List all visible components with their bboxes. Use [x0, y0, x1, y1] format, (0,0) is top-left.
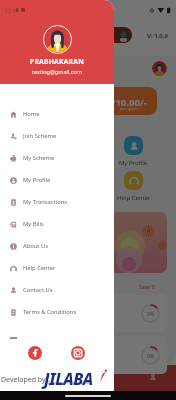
- staticText: 0%: [147, 311, 155, 318]
- staticText: Contact Us: [23, 286, 53, 294]
- button[interactable]: Contact Us: [0, 279, 114, 301]
- staticText: per gram: [120, 106, 138, 111]
- staticText: My Scheme: [23, 154, 55, 162]
- staticText: Terms & Conditions: [23, 308, 77, 316]
- staticText: 12:43: [5, 7, 19, 14]
- staticText: Save ₹!: [139, 284, 156, 291]
- staticText: About Us: [23, 242, 48, 250]
- staticText: My Transactions: [23, 198, 68, 206]
- button[interactable]: My Bills: [0, 213, 114, 235]
- staticText: Help Center: [117, 194, 151, 202]
- button[interactable]: Join Scheme: [0, 125, 114, 147]
- staticText: Developed by: [1, 375, 46, 385]
- staticText: Delivering software solutions: [48, 381, 92, 385]
- button[interactable]: Logout: [10, 337, 17, 339]
- button[interactable]: Home: [0, 103, 114, 125]
- button[interactable]: My Transactions: [0, 191, 114, 213]
- staticText: My Profile: [23, 176, 51, 184]
- staticText: V: 1.0.0: [147, 32, 168, 40]
- button[interactable]: My Profile: [0, 169, 114, 191]
- staticText: Home: [23, 110, 40, 118]
- staticText: 710.00/-: [110, 96, 147, 109]
- staticText: PRABHAKARAN: [30, 57, 84, 66]
- staticText: My Bills: [23, 220, 44, 228]
- button[interactable]: Facebook: [28, 346, 42, 360]
- staticText: JILABA: [44, 368, 93, 390]
- staticText: testing@gmail.com: [32, 68, 82, 75]
- button[interactable]: Instagram: [71, 346, 85, 360]
- button[interactable]: My Scheme: [0, 147, 114, 169]
- staticText: My Profile: [119, 159, 148, 167]
- staticText: Help Center: [23, 264, 56, 272]
- button[interactable]: Terms & Conditions: [0, 301, 114, 323]
- staticText: 0%: [147, 353, 155, 360]
- button[interactable]: About Us: [0, 235, 114, 257]
- staticText: Join Scheme: [23, 132, 57, 140]
- button[interactable]: Help Center: [0, 257, 114, 279]
